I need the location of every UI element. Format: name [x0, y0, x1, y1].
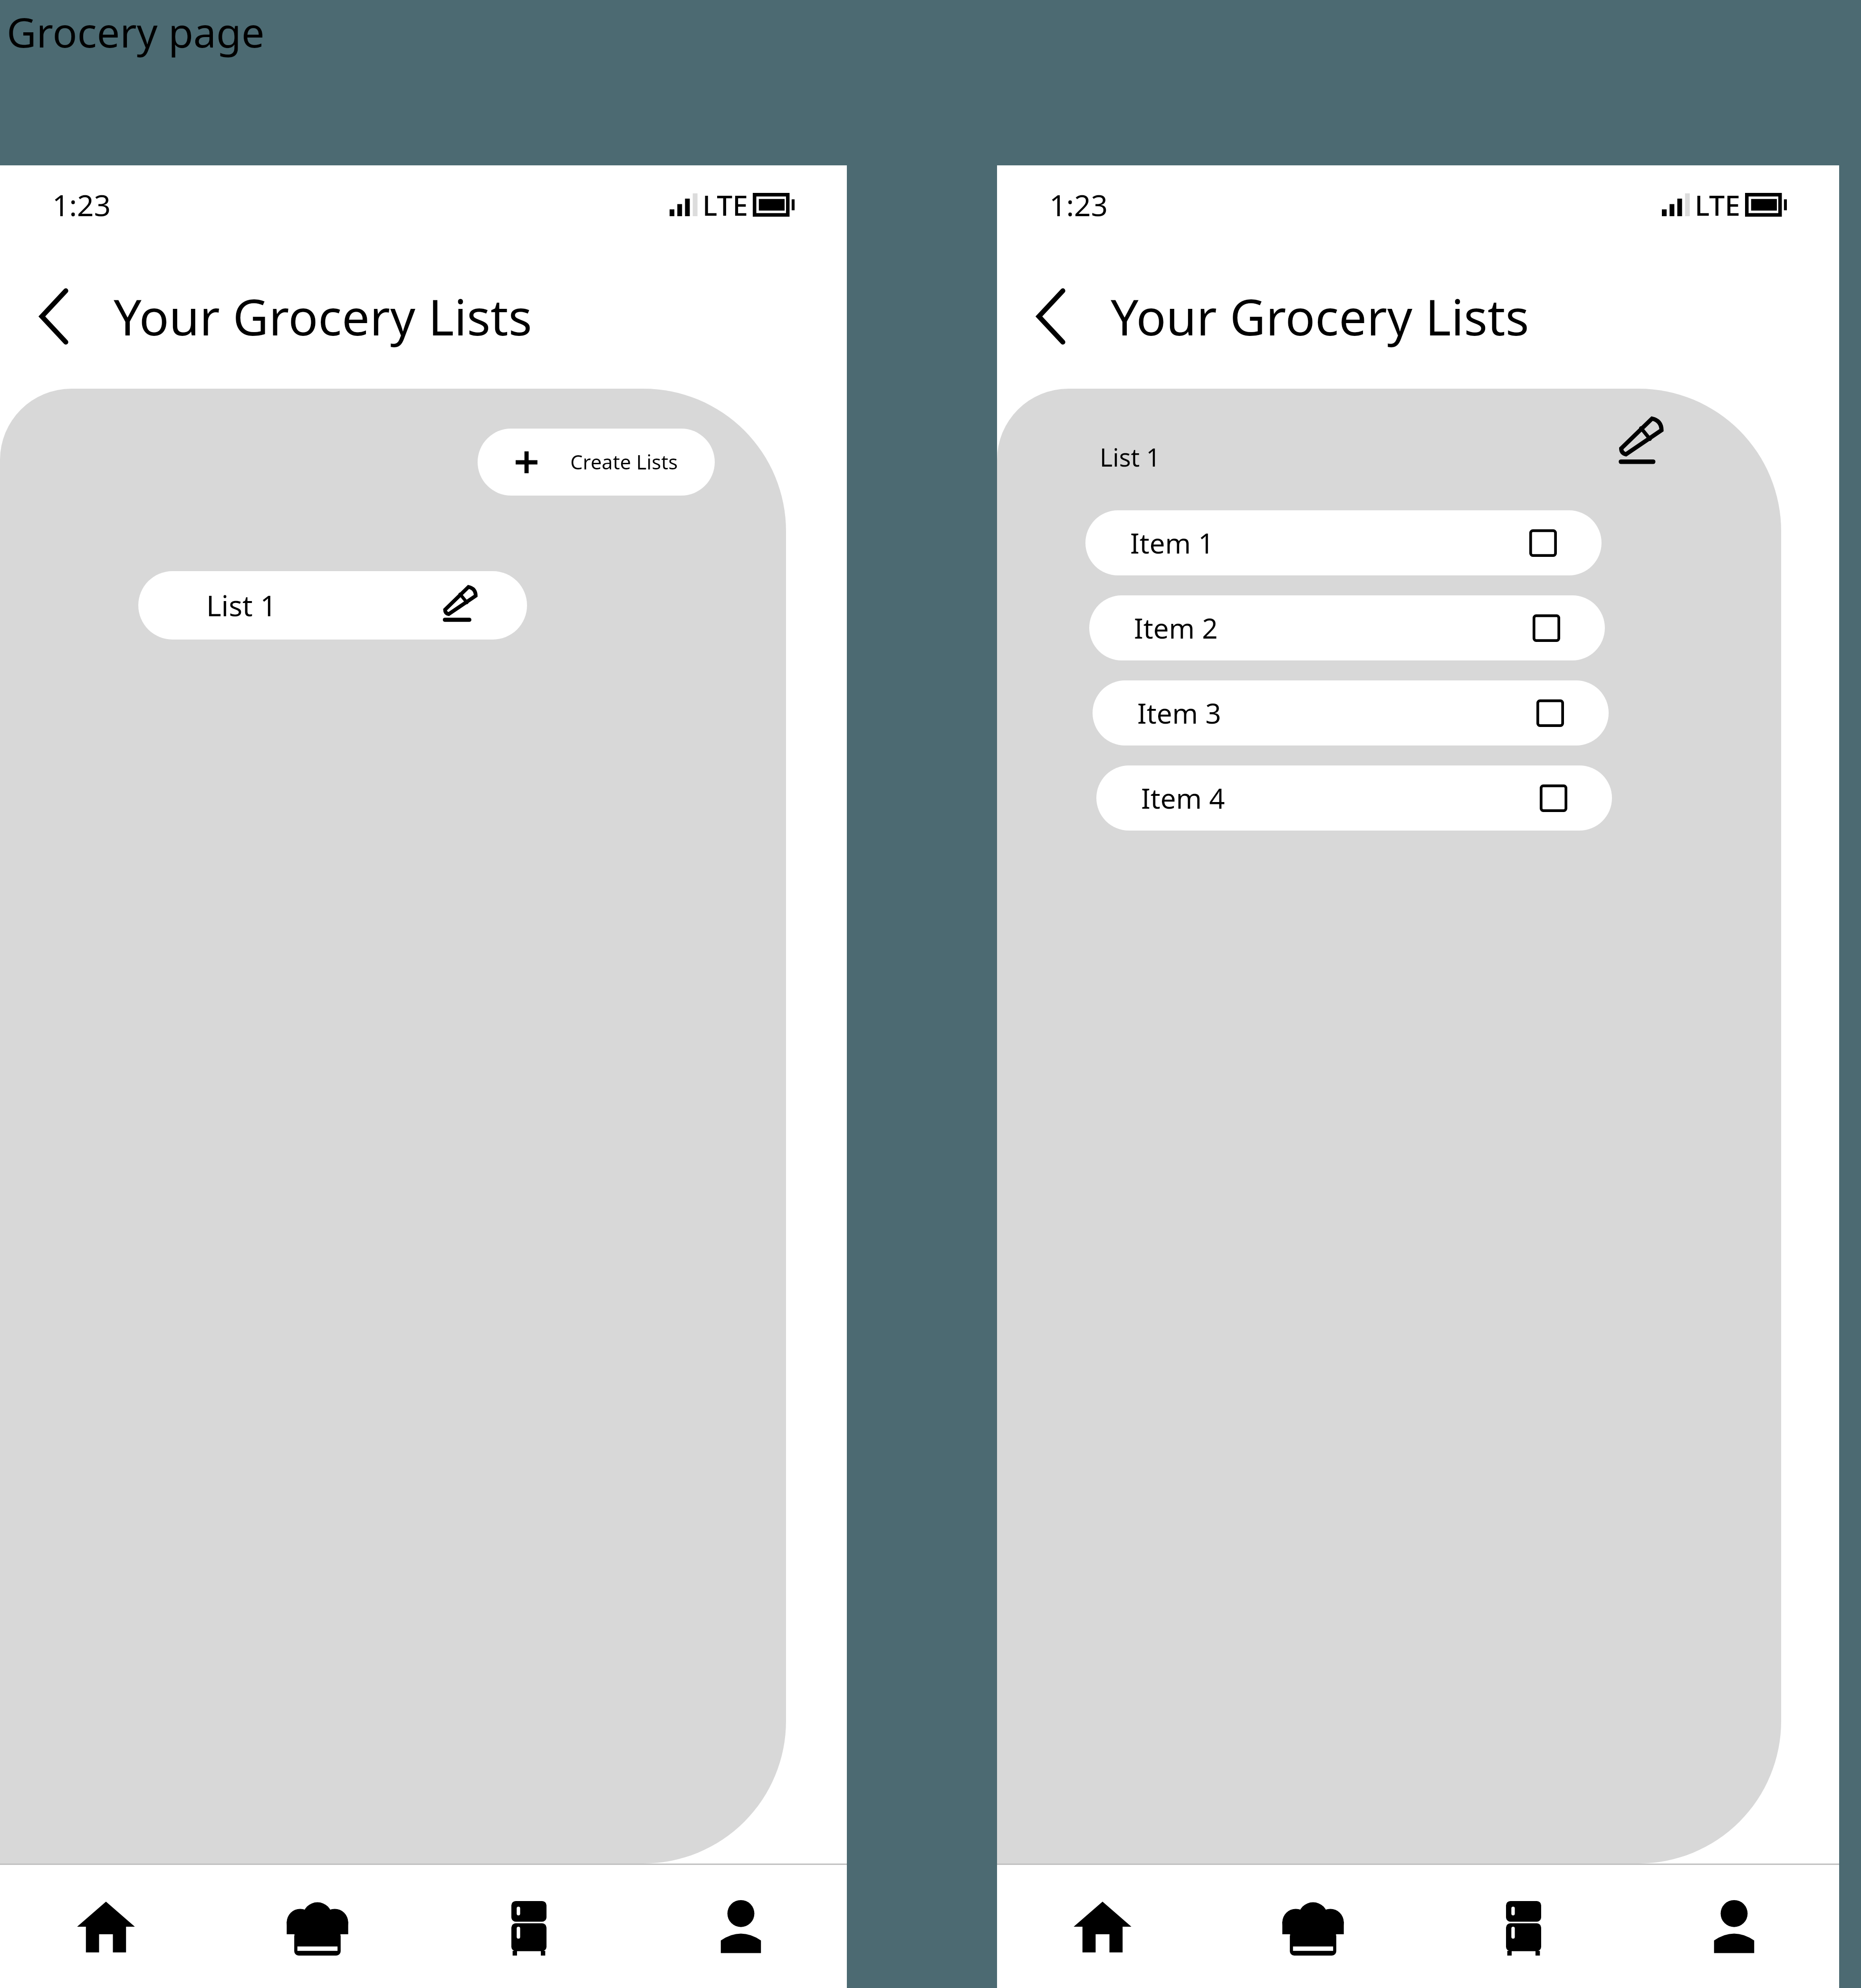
staticText: Your Grocery Lists [1111, 283, 1529, 350]
button[interactable]: Fridge [423, 1865, 635, 1988]
button[interactable]: Item 2 [1089, 595, 1605, 660]
button[interactable]: Fridge [1418, 1865, 1629, 1988]
staticText: Your Grocery Lists [114, 283, 532, 350]
button[interactable]: Edit list [441, 586, 480, 625]
staticText: Item 2 [1134, 609, 1218, 647]
button[interactable]: Home [997, 1865, 1208, 1988]
staticText: Item 1 [1130, 524, 1214, 562]
staticText: Grocery page [7, 4, 265, 59]
button[interactable]: Edit list [1615, 417, 1667, 469]
staticText: List 1 [206, 586, 277, 625]
staticText: 1:23 [1049, 185, 1108, 225]
button[interactable]: Item 4 [1096, 765, 1612, 831]
button[interactable]: Item 1 [1085, 510, 1602, 575]
button[interactable]: Profile [1629, 1865, 1839, 1988]
staticText: 1:23 [52, 185, 111, 225]
button[interactable]: Back [24, 275, 85, 358]
button[interactable]: Recipes [211, 1865, 423, 1988]
staticText: LTE [702, 186, 748, 224]
staticText: Item 3 [1137, 694, 1221, 732]
button[interactable]: Home [0, 1865, 211, 1988]
button[interactable]: Create Lists [478, 429, 715, 496]
button[interactable]: List 1 [138, 571, 527, 640]
button[interactable]: Profile [635, 1865, 847, 1988]
staticText: LTE [1695, 186, 1741, 224]
staticText: List 1 [1100, 440, 1161, 474]
button[interactable]: Recipes [1208, 1865, 1418, 1988]
button[interactable]: Back [1021, 275, 1082, 358]
staticText: Item 4 [1141, 779, 1225, 817]
button[interactable]: Item 3 [1093, 680, 1609, 745]
staticText: Create Lists [570, 449, 678, 476]
